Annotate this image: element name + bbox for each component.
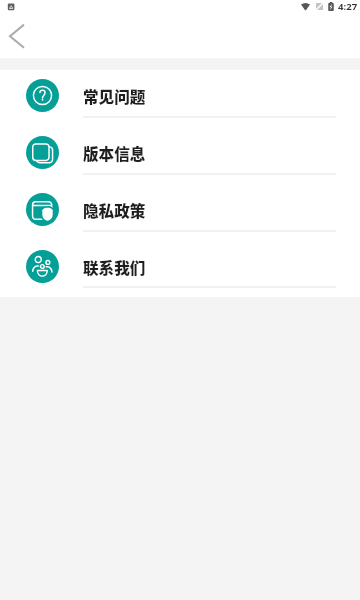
button[interactable]: Back (0, 20, 40, 58)
staticText: 版本信息 (83, 142, 146, 165)
staticText: 隐私政策 (83, 199, 146, 222)
staticText: 联系我们 (83, 256, 146, 279)
button[interactable]: 联系我们 (0, 231, 360, 287)
button[interactable]: 常见问题 (0, 70, 360, 116)
staticText: 4:27 (338, 0, 358, 13)
staticText: 常见问题 (83, 85, 146, 108)
button[interactable]: 隐私政策 (0, 174, 360, 230)
button[interactable]: 版本信息 (0, 117, 360, 173)
